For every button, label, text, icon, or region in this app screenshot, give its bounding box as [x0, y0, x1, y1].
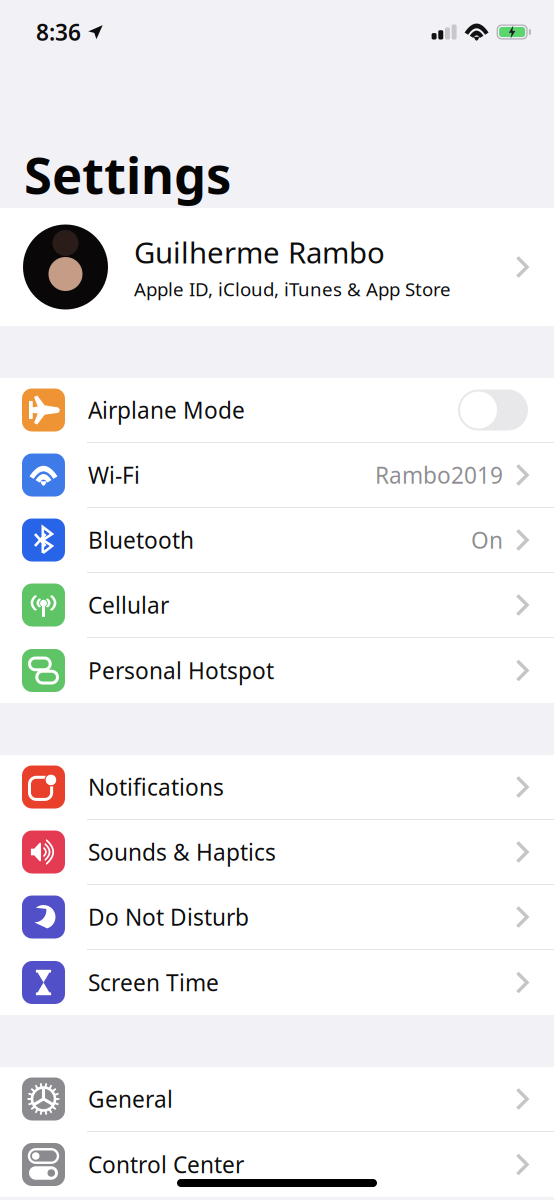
staticText: Screen Time — [88, 967, 219, 997]
staticText: General — [88, 1084, 173, 1114]
button[interactable]: General — [0, 1067, 554, 1132]
staticText: Apple ID, iCloud, iTunes & App Store — [134, 277, 451, 301]
button[interactable]: Wi-Fi — [0, 443, 554, 508]
button[interactable]: Do Not Disturb — [0, 885, 554, 950]
staticText: Rambo2019 — [375, 460, 503, 490]
button[interactable]: Screen Time — [0, 950, 554, 1015]
staticText: Do Not Disturb — [88, 902, 249, 932]
button[interactable]: Sounds & Haptics — [0, 820, 554, 885]
staticText: Guilherme Rambo — [134, 233, 385, 272]
staticText: Sounds & Haptics — [88, 837, 276, 867]
staticText: 8:36 — [36, 17, 81, 47]
button[interactable]: Airplane Mode — [0, 378, 554, 443]
staticText: Cellular — [88, 590, 169, 620]
staticText: Notifications — [88, 772, 224, 802]
button[interactable]: Control Center — [0, 1132, 554, 1197]
button[interactable]: Notifications — [0, 755, 554, 820]
button[interactable]: Cellular — [0, 573, 554, 638]
staticText: Wi-Fi — [88, 460, 140, 490]
staticText: Settings — [24, 141, 231, 208]
button[interactable]: Bluetooth — [0, 508, 554, 573]
button[interactable]: Guilherme Rambo — [0, 208, 554, 326]
staticText: Control Center — [88, 1149, 244, 1179]
staticText: Bluetooth — [88, 525, 194, 555]
staticText: Airplane Mode — [88, 395, 245, 425]
staticText: On — [471, 525, 503, 555]
button[interactable]: Personal Hotspot — [0, 638, 554, 703]
staticText: Personal Hotspot — [88, 655, 274, 685]
